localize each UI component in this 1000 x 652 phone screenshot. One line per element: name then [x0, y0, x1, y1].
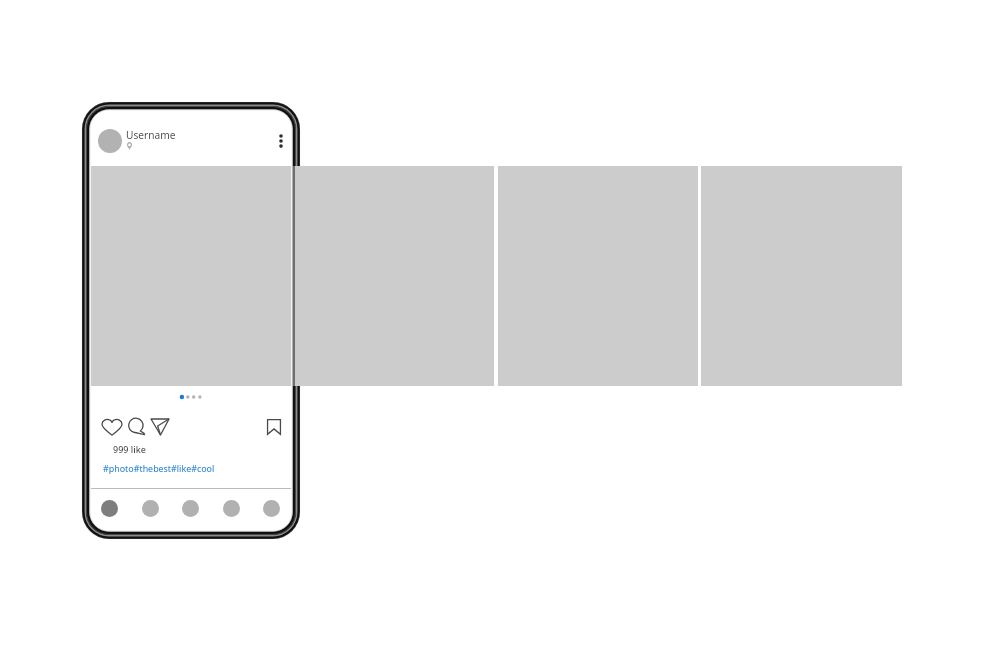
button[interactable]: Share	[149, 417, 171, 437]
button[interactable]: Save	[264, 417, 283, 437]
button[interactable]: Like	[99, 417, 124, 437]
button[interactable]: Profile picture	[98, 129, 122, 153]
button[interactable]: Tab 2	[142, 500, 159, 517]
button[interactable]: Tab 3	[182, 500, 199, 517]
button[interactable]: Username	[126, 128, 176, 142]
button[interactable]: Comment	[127, 417, 147, 437]
button[interactable]: #photo#thebest#like#cool	[103, 462, 215, 474]
button[interactable]: Tab 4	[223, 500, 240, 517]
button[interactable]: Tab 5	[263, 500, 280, 517]
button[interactable]: More options	[273, 130, 289, 152]
staticText: 999 like	[113, 443, 146, 455]
button[interactable]: Tab 1	[101, 500, 118, 517]
